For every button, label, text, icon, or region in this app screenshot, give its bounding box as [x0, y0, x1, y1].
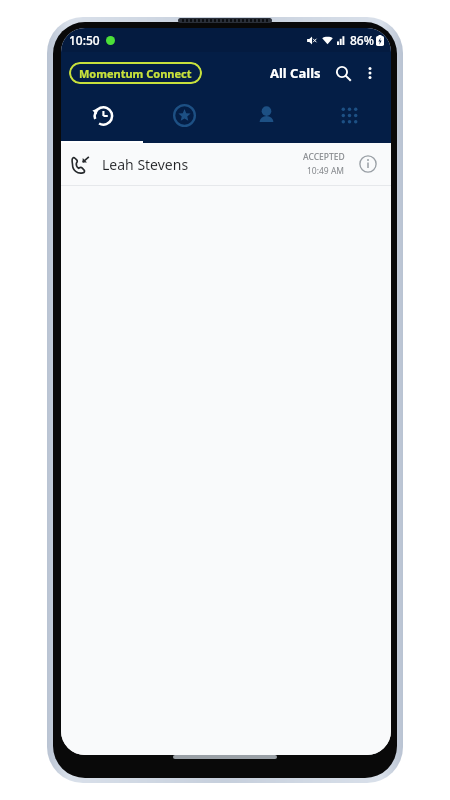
button[interactable]: Momentum Connect	[69, 62, 202, 84]
button[interactable]: Favorites	[143, 93, 225, 143]
staticText: 86%	[350, 32, 374, 48]
staticText: 10:50	[69, 32, 100, 48]
staticText: All Calls	[270, 64, 321, 82]
button[interactable]: Call details	[355, 151, 381, 177]
button[interactable]: Leah Stevens	[61, 143, 391, 185]
staticText: ACCEPTED	[303, 151, 345, 163]
button[interactable]: Contacts	[225, 93, 308, 143]
staticText: 10:49 AM	[307, 165, 345, 177]
button[interactable]: Recents	[61, 93, 143, 143]
staticText: Momentum Connect	[79, 66, 192, 81]
button[interactable]: All Calls	[268, 60, 323, 86]
button[interactable]: More options	[357, 60, 383, 86]
button[interactable]: Search	[329, 59, 357, 87]
button[interactable]: Dialpad	[308, 93, 391, 143]
staticText: Leah Stevens	[102, 155, 189, 174]
